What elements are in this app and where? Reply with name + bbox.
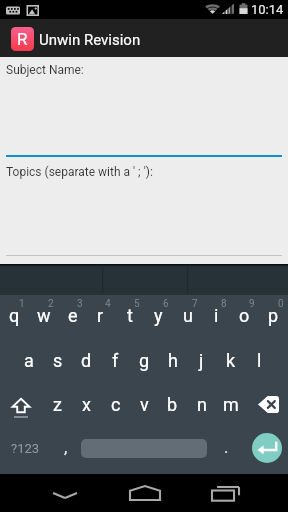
- button[interactable]: k: [216, 338, 245, 382]
- staticText: 0: [278, 298, 284, 310]
- staticText: u: [183, 305, 193, 326]
- button[interactable]: d: [72, 338, 101, 382]
- button[interactable]: R: [11, 27, 34, 51]
- staticText: Topics (separate with a ' ; '):: [6, 165, 153, 179]
- staticText: s: [53, 350, 63, 371]
- staticText: a: [24, 350, 34, 371]
- staticText: 5: [134, 298, 140, 310]
- button[interactable]: s: [43, 338, 72, 382]
- button[interactable]: p: [259, 293, 288, 337]
- staticText: t: [127, 305, 133, 326]
- staticText: x: [82, 394, 91, 415]
- staticText: g: [139, 350, 150, 371]
- button[interactable]: Recent apps: [197, 474, 254, 512]
- staticText: 6: [163, 298, 169, 310]
- button[interactable]: a: [14, 338, 43, 382]
- staticText: 10:14: [251, 2, 284, 17]
- staticText: y: [154, 305, 163, 326]
- button[interactable]: i: [202, 293, 231, 337]
- button[interactable]: v: [130, 382, 159, 426]
- staticText: m: [223, 394, 239, 415]
- button[interactable]: ,: [50, 426, 81, 470]
- staticText: d: [81, 350, 92, 371]
- button[interactable]: w: [29, 293, 58, 337]
- button[interactable]: h: [158, 338, 187, 382]
- staticText: f: [112, 350, 119, 371]
- button[interactable]: Space: [81, 426, 207, 470]
- staticText: e: [68, 305, 78, 326]
- button[interactable]: Unwin Revision: [39, 31, 141, 49]
- button[interactable]: t: [115, 293, 144, 337]
- button[interactable]: x: [72, 382, 101, 426]
- staticText: 8: [221, 298, 227, 310]
- staticText: h: [168, 350, 178, 371]
- button[interactable]: Shift: [0, 382, 43, 426]
- button[interactable]: y: [144, 293, 173, 337]
- button[interactable]: .: [207, 426, 245, 470]
- staticText: .: [224, 437, 229, 457]
- staticText: q: [9, 305, 20, 326]
- staticText: i: [214, 305, 219, 326]
- button[interactable]: c: [101, 382, 130, 426]
- staticText: j: [199, 350, 204, 371]
- button[interactable]: o: [230, 293, 259, 337]
- staticText: o: [239, 305, 250, 326]
- button[interactable]: b: [158, 382, 187, 426]
- button[interactable]: Close keyboard: [36, 474, 93, 512]
- staticText: c: [111, 394, 121, 415]
- button[interactable]: n: [187, 382, 216, 426]
- button[interactable]: r: [86, 293, 115, 337]
- staticText: l: [257, 350, 262, 371]
- staticText: n: [197, 394, 207, 415]
- button[interactable]: z: [43, 382, 72, 426]
- staticText: v: [140, 394, 149, 415]
- staticText: b: [167, 394, 178, 415]
- button[interactable]: e: [58, 293, 87, 337]
- button[interactable]: Home: [116, 474, 173, 512]
- staticText: z: [53, 394, 62, 415]
- staticText: ,: [64, 437, 68, 457]
- button[interactable]: ?123: [0, 426, 50, 470]
- staticText: 9: [249, 298, 255, 310]
- button[interactable]: g: [130, 338, 159, 382]
- button[interactable]: f: [101, 338, 130, 382]
- button[interactable]: q: [0, 293, 29, 337]
- button[interactable]: [0, 264, 288, 295]
- staticText: 1: [19, 298, 25, 310]
- staticText: k: [226, 350, 236, 371]
- staticText: r: [97, 305, 104, 326]
- staticText: 3: [77, 298, 83, 310]
- button[interactable]: Enter: [245, 426, 288, 470]
- button[interactable]: u: [173, 293, 202, 337]
- staticText: p: [268, 305, 279, 326]
- staticText: ?123: [11, 441, 40, 456]
- button[interactable]: Backspace: [245, 382, 288, 426]
- button[interactable]: j: [187, 338, 216, 382]
- staticText: w: [37, 305, 51, 326]
- button[interactable]: l: [245, 338, 274, 382]
- staticText: 4: [105, 298, 111, 310]
- staticText: R: [17, 29, 28, 49]
- staticText: 2: [48, 298, 54, 310]
- staticText: Subject Name:: [6, 63, 84, 77]
- staticText: 7: [192, 298, 198, 310]
- button[interactable]: m: [216, 382, 245, 426]
